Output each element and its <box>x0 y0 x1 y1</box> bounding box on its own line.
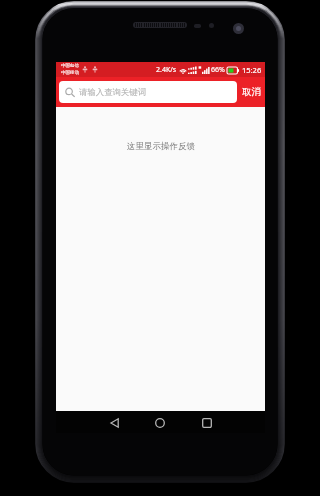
staticText: 15:26 <box>242 65 262 75</box>
button[interactable]: 请输入查询关键词 <box>59 81 237 103</box>
staticText: 中国移动 <box>61 70 79 76</box>
button[interactable]: Home <box>148 412 172 434</box>
staticText: 66% <box>211 65 225 75</box>
button[interactable]: 取消 <box>237 77 265 107</box>
staticText: 中国电信 <box>61 63 79 69</box>
staticText: 取消 <box>242 86 261 98</box>
staticText: 这里显示操作反馈 <box>127 141 195 152</box>
staticText: 2.4K/s <box>156 65 177 75</box>
button[interactable]: Recent apps <box>195 412 219 434</box>
button[interactable]: Back <box>102 412 126 434</box>
staticText: 请输入查询关键词 <box>79 87 147 98</box>
